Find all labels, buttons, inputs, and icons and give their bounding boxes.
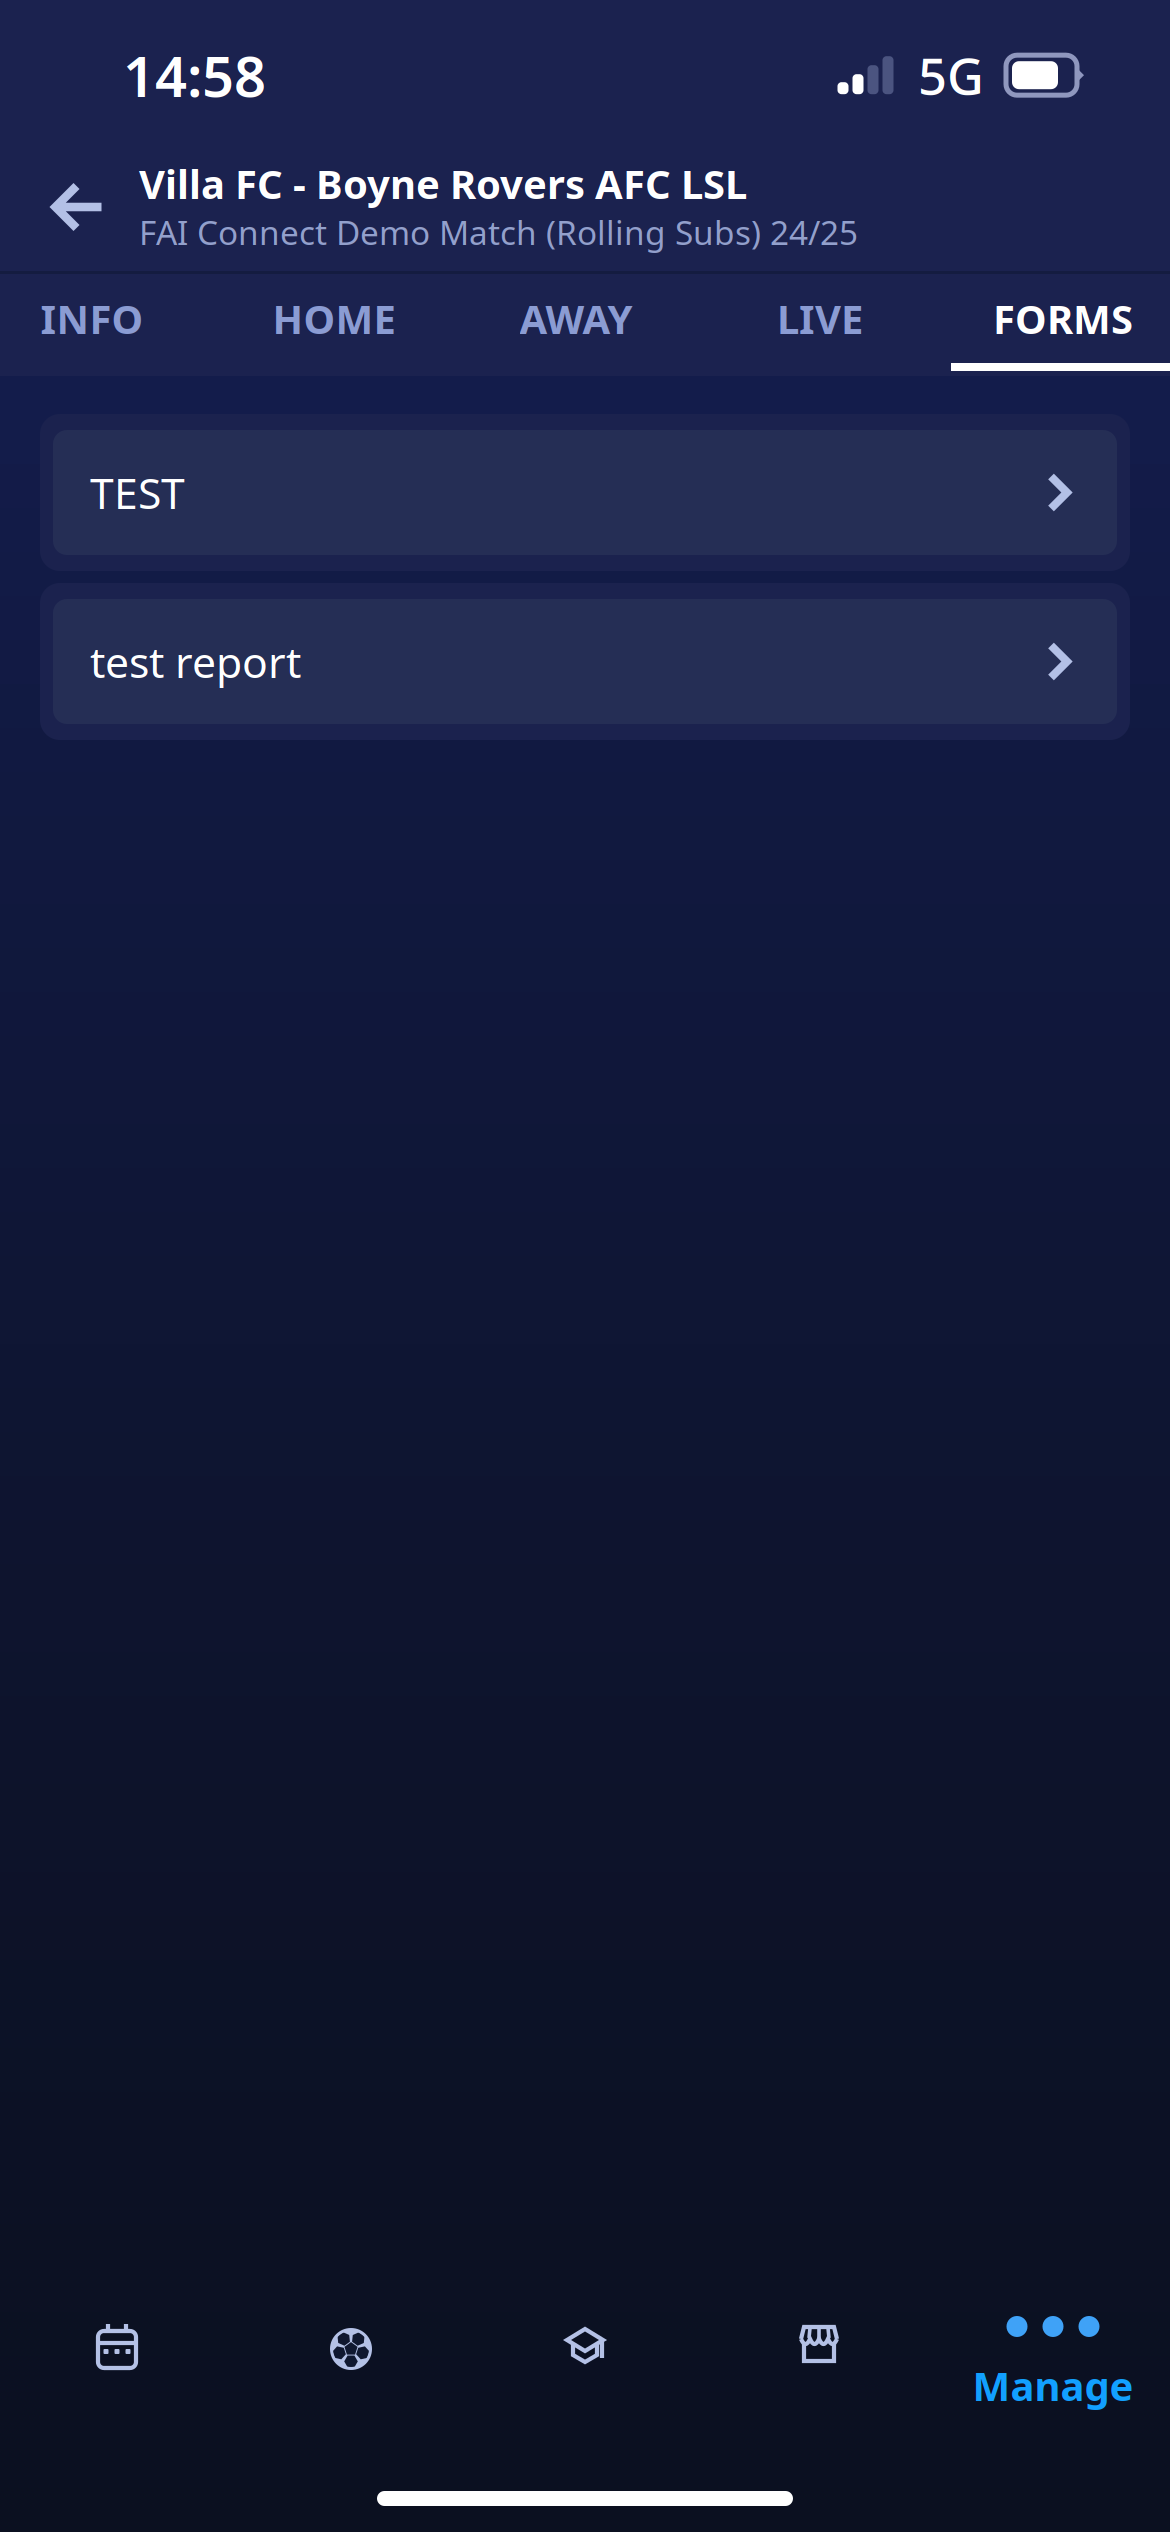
- staticText: Villa FC - Boyne Rovers AFC LSL: [139, 157, 747, 210]
- staticText: test report: [90, 633, 301, 690]
- staticText: FAI Connect Demo Match (Rolling Subs) 24…: [139, 210, 858, 254]
- button[interactable]: LIVE: [684, 274, 956, 376]
- button[interactable]: Manage: [936, 2300, 1170, 2410]
- button[interactable]: Back: [26, 149, 122, 261]
- button[interactable]: Fixtures: [0, 2300, 234, 2410]
- button[interactable]: TEST: [0, 414, 1170, 571]
- button[interactable]: test report: [0, 583, 1170, 740]
- staticText: FORMS: [993, 292, 1133, 345]
- button[interactable]: Shop: [702, 2300, 936, 2410]
- button[interactable]: Learning: [468, 2300, 702, 2410]
- staticText: 5G: [918, 41, 984, 109]
- button[interactable]: Matches: [234, 2300, 468, 2410]
- button[interactable]: AWAY: [468, 274, 684, 376]
- staticText: TEST: [90, 464, 185, 521]
- staticText: 14:58: [123, 38, 266, 112]
- button[interactable]: INFO: [0, 274, 184, 376]
- button[interactable]: FORMS: [956, 274, 1170, 376]
- button[interactable]: HOME: [200, 274, 468, 376]
- staticText: LIVE: [777, 292, 863, 345]
- staticText: INFO: [40, 292, 143, 345]
- staticText: AWAY: [519, 292, 632, 345]
- staticText: HOME: [272, 292, 395, 345]
- staticText: Manage: [972, 2359, 1133, 2412]
